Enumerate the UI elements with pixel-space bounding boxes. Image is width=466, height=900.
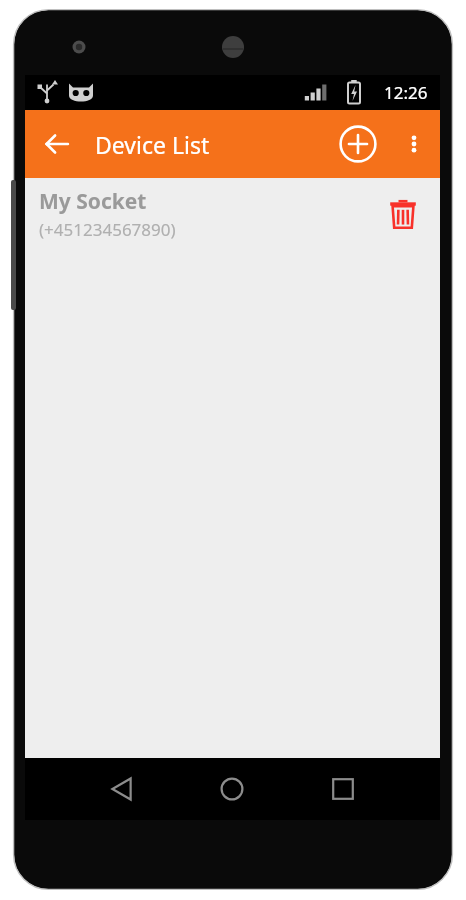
staticText: (+451234567890) [39, 218, 176, 241]
staticText: 12:26 [384, 81, 428, 104]
button[interactable]: Add device [334, 120, 382, 168]
button[interactable]: More options [392, 122, 436, 166]
button[interactable]: Back [33, 120, 81, 168]
button[interactable]: Back [94, 758, 150, 820]
button[interactable]: Home [204, 758, 260, 820]
button[interactable]: Recent apps [315, 758, 371, 820]
button[interactable]: My Socket [25, 178, 440, 250]
staticText: My Socket [39, 187, 147, 216]
button[interactable]: Delete device [380, 191, 426, 237]
staticText: Device List [95, 129, 210, 160]
